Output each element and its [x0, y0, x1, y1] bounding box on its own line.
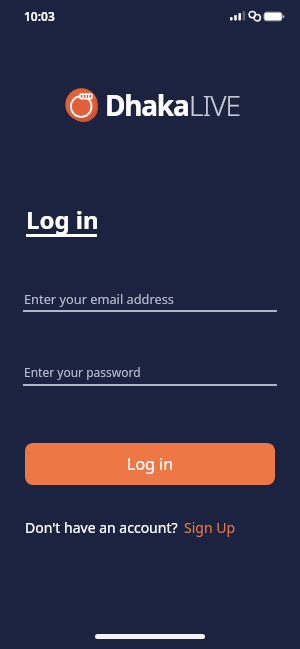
staticText: LIVE — [189, 86, 240, 122]
button[interactable]: Log in — [25, 443, 275, 485]
staticText: Don't have an account? — [25, 518, 178, 537]
staticText: Enter your email address — [24, 290, 174, 307]
staticText: Enter your password — [24, 364, 141, 380]
staticText: Log in — [127, 453, 174, 475]
button[interactable]: Enter your email address — [23, 288, 277, 312]
staticText: 10:03 — [24, 8, 55, 24]
button[interactable]: Sign Up — [184, 518, 236, 537]
staticText: Dhaka — [105, 86, 189, 122]
staticText: Log in — [26, 203, 99, 236]
button[interactable]: Enter your password — [23, 362, 277, 386]
